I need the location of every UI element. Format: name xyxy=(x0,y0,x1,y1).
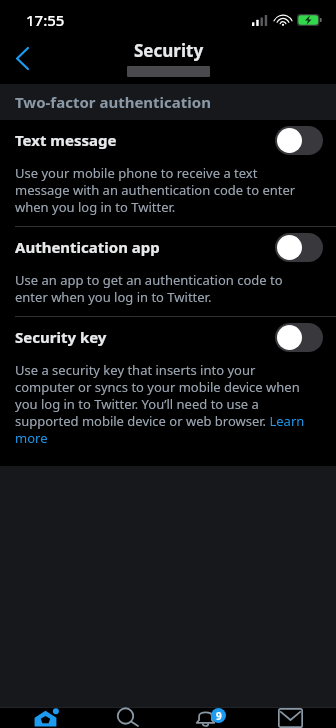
button[interactable]: Security key xyxy=(0,317,336,457)
staticText: 9 xyxy=(216,709,222,723)
button[interactable]: Toggle off xyxy=(275,233,323,262)
staticText: Use a security key that inserts into you… xyxy=(15,361,309,447)
button[interactable]: Text message xyxy=(0,120,336,226)
staticText: Use your mobile phone to receive a text … xyxy=(15,164,309,216)
staticText: Security key xyxy=(15,327,275,347)
staticText: Security xyxy=(134,39,204,62)
button[interactable]: Messages xyxy=(255,708,325,728)
button[interactable]: Toggle off xyxy=(275,323,323,352)
button[interactable]: Home xyxy=(11,708,81,728)
staticText: Authentication app xyxy=(15,237,275,257)
button[interactable]: Search xyxy=(92,708,162,728)
staticText: 17:55 xyxy=(26,10,65,30)
staticText: Two-factor authentication xyxy=(15,92,211,112)
button[interactable]: Authentication app xyxy=(0,227,336,316)
button[interactable]: Notifications xyxy=(174,708,244,728)
staticText: Use an app to get an authentication code… xyxy=(15,271,309,306)
button[interactable]: Toggle off xyxy=(275,126,323,155)
staticText: Text message xyxy=(15,130,275,150)
button[interactable]: Back xyxy=(0,36,44,80)
